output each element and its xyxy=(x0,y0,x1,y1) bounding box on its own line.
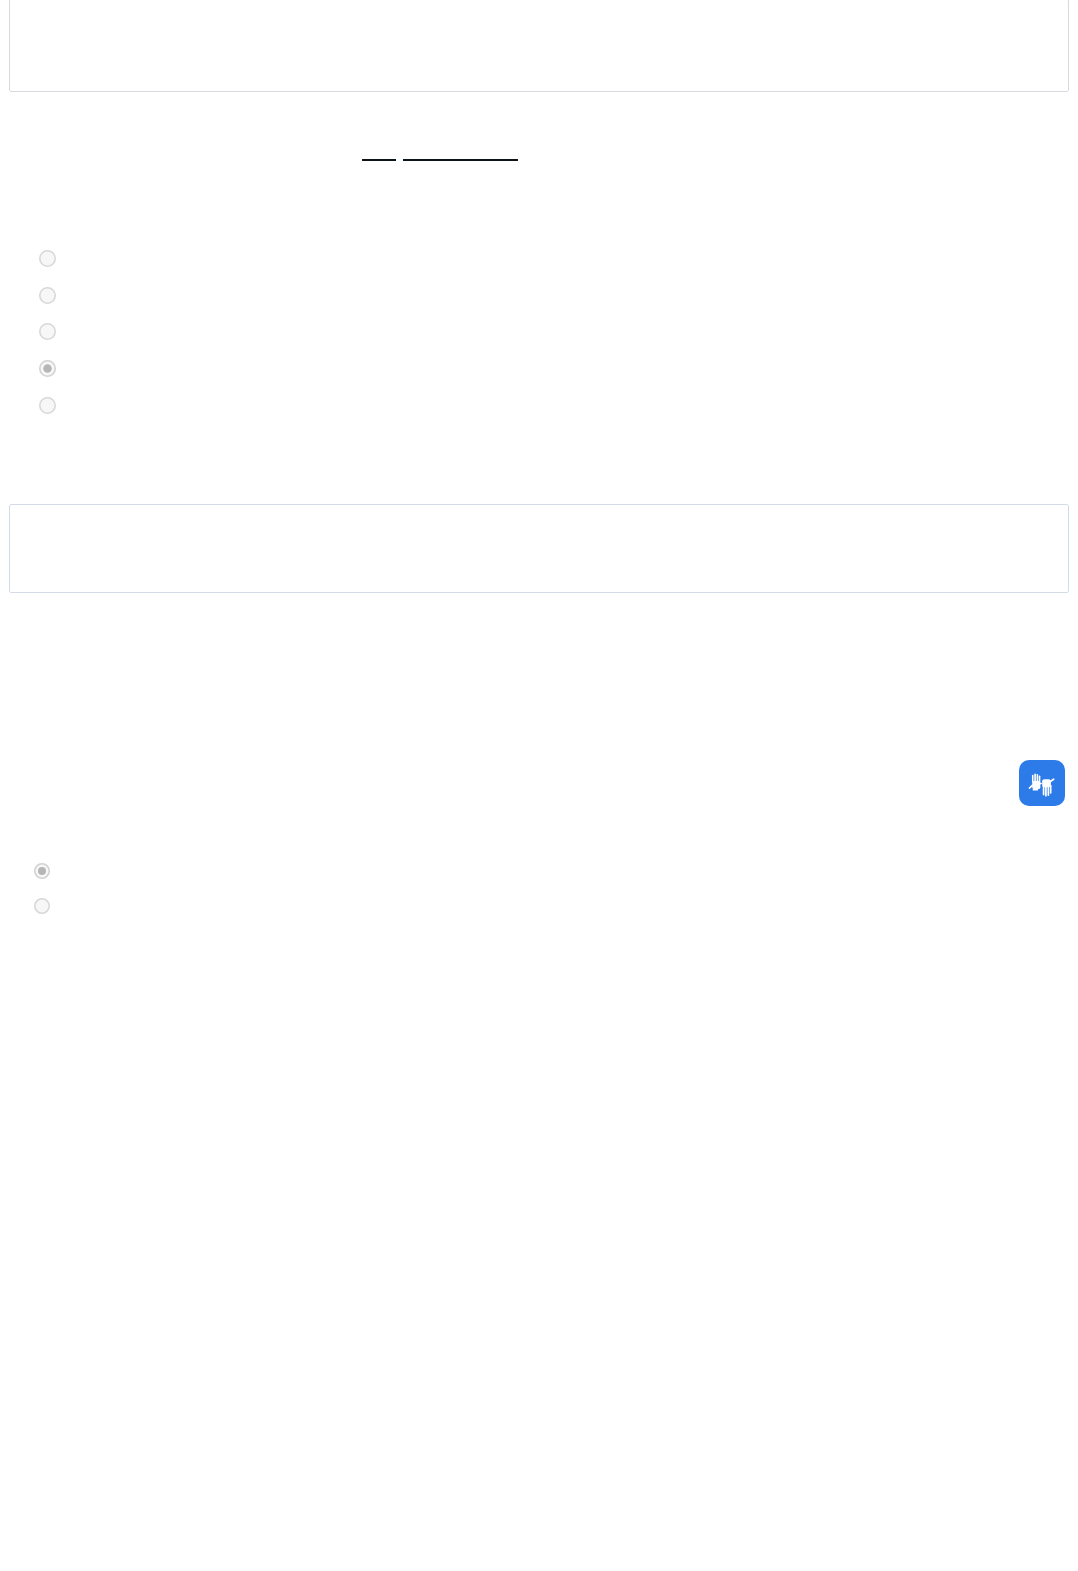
button[interactable]: Sign language interpretation xyxy=(1019,760,1065,806)
button[interactable] xyxy=(32,390,63,421)
button[interactable] xyxy=(27,856,57,886)
button[interactable] xyxy=(27,891,57,921)
button[interactable] xyxy=(32,316,63,347)
button[interactable] xyxy=(32,280,63,311)
button[interactable] xyxy=(32,353,63,384)
button[interactable] xyxy=(32,243,63,274)
button[interactable] xyxy=(9,0,1069,92)
button[interactable] xyxy=(9,504,1069,593)
